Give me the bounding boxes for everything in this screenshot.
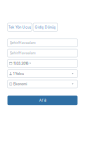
- button[interactable]: 1 Yolcu: [7, 70, 77, 78]
- staticText: Tek Yön Uçuş: [8, 25, 31, 29]
- staticText: 11.03.2016: [13, 61, 28, 65]
- button[interactable]: Tek Yön Uçuş: [7, 23, 32, 31]
- button[interactable]: Gidiş Dönüş: [33, 23, 58, 31]
- button[interactable]: Ekonomi: [7, 80, 77, 88]
- staticText: 1 Yolcu: [13, 72, 24, 76]
- staticText: Gidiş Dönüş: [35, 25, 56, 29]
- staticText: Ara: [39, 98, 46, 103]
- staticText: Şehir/Havaalanı: [10, 51, 36, 55]
- button[interactable]: 11.03.2016: [7, 59, 77, 67]
- button[interactable]: Ara: [7, 96, 77, 105]
- staticText: Şehir/Havaalanı: [10, 41, 36, 45]
- staticText: Ekonomi: [13, 82, 27, 86]
